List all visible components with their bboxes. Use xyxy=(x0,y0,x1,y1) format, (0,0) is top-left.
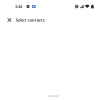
staticText: Select contacts xyxy=(16,17,45,23)
button[interactable]: Close xyxy=(4,15,14,25)
staticText: 3:44 xyxy=(15,4,22,9)
